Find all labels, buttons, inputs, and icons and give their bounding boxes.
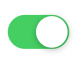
button[interactable]: Toggle switch, on [8, 15, 69, 49]
